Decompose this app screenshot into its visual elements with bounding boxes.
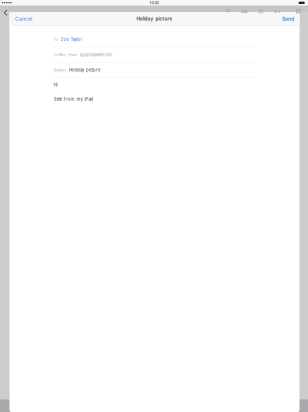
button[interactable]: New message xyxy=(295,8,303,16)
button[interactable]: To: xyxy=(53,26,255,47)
staticText: Holiday picture xyxy=(136,16,172,22)
staticText: a@groupware.com xyxy=(79,52,112,57)
staticText: 10:00 xyxy=(149,0,158,5)
button[interactable]: Cc/Bcc, From: xyxy=(53,47,255,62)
button[interactable]: Send xyxy=(280,14,296,24)
button[interactable]: Move to folder xyxy=(240,8,248,16)
staticText: To: xyxy=(53,37,58,42)
staticText: Cc/Bcc, From: xyxy=(53,52,77,57)
staticText: Send xyxy=(282,16,294,22)
button[interactable]: Back xyxy=(2,9,10,17)
button[interactable]: Reply xyxy=(273,8,281,16)
staticText: Holiday picture xyxy=(69,67,100,73)
staticText: Hi xyxy=(53,82,57,88)
staticText: Sent from my iPad xyxy=(53,97,93,102)
button[interactable]: Cancel xyxy=(13,14,34,24)
button[interactable]: Delete xyxy=(257,8,265,16)
staticText: Zoe Taylor xyxy=(60,37,82,42)
button[interactable]: Flag xyxy=(224,8,232,16)
staticText: Cancel xyxy=(15,16,32,22)
button[interactable]: Subject: xyxy=(53,63,255,77)
staticText: Subject: xyxy=(53,68,66,72)
